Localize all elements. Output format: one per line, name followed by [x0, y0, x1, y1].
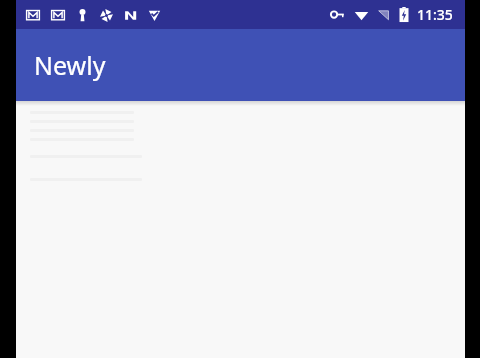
staticText: 11:35	[417, 5, 453, 24]
staticText: Newly	[34, 48, 106, 82]
button[interactable]: Newly	[16, 29, 465, 101]
